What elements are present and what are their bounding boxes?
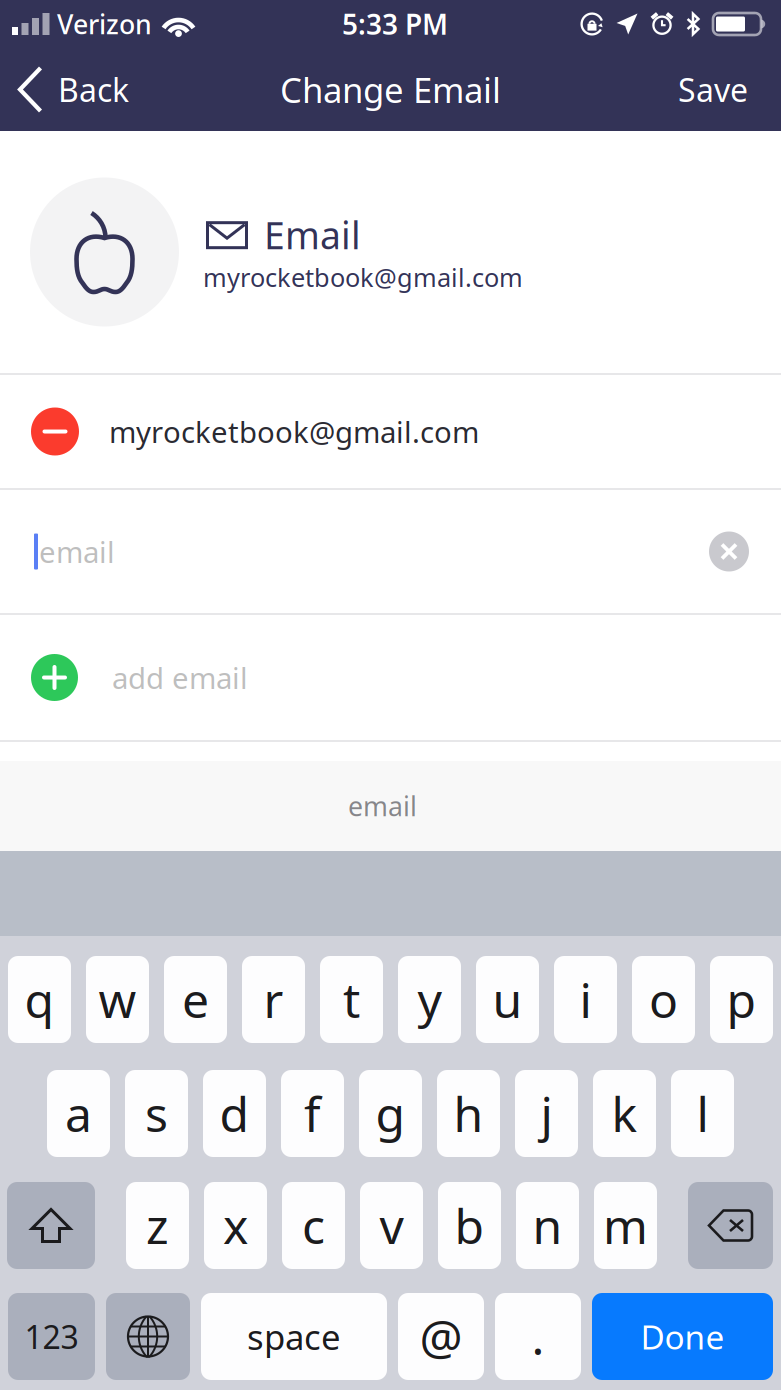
staticText: j bbox=[540, 1082, 552, 1145]
button[interactable]: Delete bbox=[688, 1182, 773, 1269]
staticText: v bbox=[379, 1194, 403, 1257]
staticText: Back bbox=[58, 68, 129, 111]
button[interactable]: Next keyboard bbox=[106, 1293, 190, 1380]
button[interactable]: v bbox=[360, 1182, 423, 1269]
staticText: 5:33 PM bbox=[342, 5, 448, 43]
staticText: Done bbox=[640, 1314, 724, 1359]
staticText: o bbox=[649, 968, 678, 1031]
staticText: space bbox=[247, 1313, 341, 1359]
staticText: p bbox=[726, 968, 756, 1031]
staticText: email bbox=[39, 532, 115, 571]
staticText: u bbox=[492, 968, 522, 1031]
staticText: q bbox=[24, 968, 54, 1031]
staticText: k bbox=[611, 1082, 637, 1145]
staticText: n bbox=[532, 1194, 562, 1257]
button[interactable]: Clear text bbox=[709, 531, 749, 571]
button[interactable]: c bbox=[282, 1182, 345, 1269]
button[interactable]: q bbox=[8, 956, 71, 1043]
staticText: b bbox=[454, 1194, 484, 1257]
staticText: . bbox=[531, 1305, 544, 1368]
button[interactable]: add email bbox=[0, 615, 781, 740]
staticText: Email bbox=[264, 210, 361, 259]
staticText: y bbox=[417, 968, 441, 1031]
staticText: a bbox=[65, 1082, 92, 1145]
staticText: r bbox=[263, 968, 283, 1031]
staticText: i bbox=[579, 968, 591, 1031]
button[interactable]: k bbox=[593, 1070, 656, 1157]
button[interactable]: 123 bbox=[8, 1293, 95, 1380]
button[interactable]: o bbox=[632, 956, 695, 1043]
staticText: s bbox=[145, 1082, 168, 1145]
button[interactable]: j bbox=[515, 1070, 578, 1157]
button[interactable]: Back bbox=[0, 53, 129, 125]
button[interactable]: . bbox=[495, 1293, 581, 1380]
button[interactable]: z bbox=[126, 1182, 189, 1269]
staticText: Save bbox=[678, 68, 748, 111]
staticText: add email bbox=[112, 658, 248, 697]
button[interactable]: m bbox=[594, 1182, 657, 1269]
staticText: email bbox=[348, 788, 417, 824]
button[interactable]: u bbox=[476, 956, 539, 1043]
button[interactable]: Done bbox=[592, 1293, 773, 1380]
button[interactable]: h bbox=[437, 1070, 500, 1157]
button[interactable]: b bbox=[438, 1182, 501, 1269]
button[interactable]: r bbox=[242, 956, 305, 1043]
staticText: myrocketbook@gmail.com bbox=[203, 260, 523, 294]
button[interactable]: l bbox=[671, 1070, 734, 1157]
button[interactable]: i bbox=[554, 956, 617, 1043]
button[interactable]: n bbox=[516, 1182, 579, 1269]
staticText: d bbox=[219, 1082, 249, 1145]
button[interactable]: e bbox=[164, 956, 227, 1043]
staticText: z bbox=[146, 1194, 169, 1257]
staticText: x bbox=[223, 1194, 248, 1257]
staticText: w bbox=[98, 968, 136, 1031]
staticText: t bbox=[343, 968, 360, 1031]
staticText: h bbox=[453, 1082, 483, 1145]
button[interactable]: @ bbox=[398, 1293, 484, 1380]
staticText: 123 bbox=[24, 1315, 78, 1358]
button[interactable]: Shift bbox=[7, 1182, 95, 1269]
button[interactable]: g bbox=[359, 1070, 422, 1157]
button[interactable]: Save bbox=[678, 56, 781, 123]
staticText: e bbox=[182, 968, 209, 1031]
button[interactable]: s bbox=[125, 1070, 188, 1157]
button[interactable]: d bbox=[203, 1070, 266, 1157]
button[interactable]: y bbox=[398, 956, 461, 1043]
staticText: f bbox=[304, 1082, 321, 1145]
button[interactable]: p bbox=[710, 956, 773, 1043]
button[interactable]: email bbox=[324, 770, 441, 842]
staticText: Verizon bbox=[57, 6, 152, 42]
staticText: g bbox=[375, 1082, 405, 1145]
button[interactable]: f bbox=[281, 1070, 344, 1157]
staticText: @ bbox=[419, 1305, 462, 1368]
staticText: l bbox=[696, 1082, 708, 1145]
button[interactable]: x bbox=[204, 1182, 267, 1269]
button[interactable]: myrocketbook@gmail.com bbox=[0, 375, 781, 488]
staticText: c bbox=[302, 1194, 325, 1257]
button[interactable]: space bbox=[201, 1293, 387, 1380]
staticText: myrocketbook@gmail.com bbox=[109, 412, 479, 451]
button[interactable]: a bbox=[47, 1070, 110, 1157]
staticText: Change Email bbox=[280, 66, 501, 112]
staticText: m bbox=[603, 1194, 648, 1257]
button[interactable]: w bbox=[86, 956, 149, 1043]
button[interactable]: t bbox=[320, 956, 383, 1043]
